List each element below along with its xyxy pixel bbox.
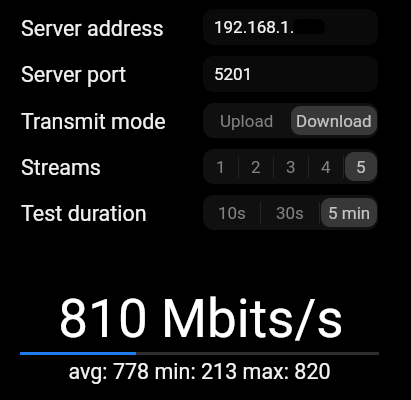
staticText: 5201 [214, 64, 253, 84]
staticText: Transmit mode [21, 109, 166, 134]
button[interactable]: 1 [204, 152, 237, 181]
staticText: 5 [356, 157, 366, 177]
staticText: Upload [220, 111, 274, 131]
staticText: avg: 778 min: 213 max: 820 [68, 359, 331, 384]
button[interactable]: Download [291, 106, 377, 135]
button[interactable]: 30s [262, 198, 318, 227]
staticText: 810 Mbits/s [58, 288, 344, 350]
staticText: Server port [21, 62, 127, 87]
button[interactable]: 3 [275, 152, 307, 181]
button[interactable]: 4 [310, 152, 342, 181]
staticText: 5 min [328, 203, 371, 223]
staticText: 2 [251, 157, 261, 177]
button[interactable]: 5201 [203, 56, 378, 92]
staticText: 10s [218, 203, 246, 223]
staticText: Server address [21, 16, 164, 41]
staticText: 1 [216, 157, 226, 177]
button[interactable]: 10s [204, 198, 259, 227]
staticText: 3 [286, 157, 296, 177]
button[interactable]: Upload [203, 103, 290, 138]
staticText: Download [296, 111, 372, 131]
staticText: Streams [21, 155, 101, 180]
button[interactable]: 5 [345, 152, 377, 181]
staticText: Test duration [21, 201, 147, 226]
staticText: 4 [321, 157, 331, 177]
button[interactable]: 192.168.1. [203, 9, 378, 45]
button[interactable]: 2 [240, 152, 272, 181]
button[interactable]: 5 min [321, 198, 377, 227]
staticText: 30s [276, 203, 304, 223]
staticText: 192.168.1. [214, 17, 295, 37]
